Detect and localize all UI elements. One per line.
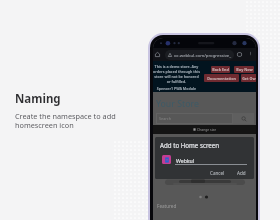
staticText: Documentation (207, 76, 236, 81)
staticText: Buy Now (236, 67, 253, 72)
button[interactable]: Home (153, 50, 162, 59)
staticText: Spencer1 PWA Module (153, 86, 200, 91)
button[interactable]: Back End (211, 66, 230, 73)
staticText: Search (159, 116, 172, 121)
staticText: Back End (212, 67, 229, 72)
button[interactable]: Buy Now (234, 66, 254, 73)
button[interactable]: Reload (235, 50, 244, 59)
button[interactable]: Get Owner (241, 74, 256, 82)
staticText: Webkul (176, 157, 195, 164)
button[interactable]: Search (233, 113, 254, 124)
button[interactable]: Search (156, 113, 233, 124)
staticText: Add to Home screen (160, 141, 220, 149)
staticText: Change size (197, 127, 217, 132)
staticText: Cancel (210, 170, 225, 176)
staticText: oc.webkul.com/progressive_ (174, 52, 232, 58)
staticText: Your Store (156, 98, 199, 110)
staticText: Naming (15, 91, 61, 107)
staticText: Featured (157, 203, 177, 209)
button[interactable]: More options (247, 50, 254, 57)
staticText: Get Owner (242, 76, 256, 81)
button[interactable]: oc.webkul.com/progressive_ (165, 50, 234, 60)
staticText: Add (237, 170, 246, 176)
button[interactable]: Cancel (208, 169, 227, 177)
button[interactable]: Documentation (204, 74, 239, 82)
button[interactable]: Add (235, 169, 248, 177)
staticText: This is a demo store. Any orders placed … (153, 64, 200, 84)
staticText: Create the namespace to add homescreen i… (15, 111, 116, 131)
